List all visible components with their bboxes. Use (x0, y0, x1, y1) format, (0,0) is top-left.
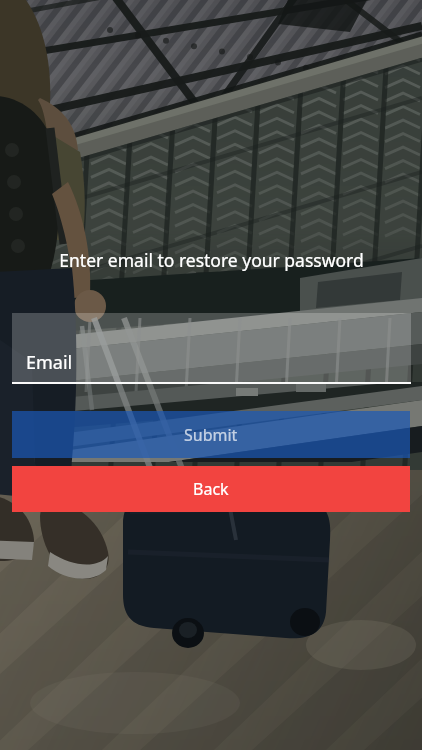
staticText: Enter email to restore your password (59, 248, 364, 272)
button[interactable]: Email (12, 313, 411, 384)
staticText: Back (193, 478, 229, 500)
button[interactable]: Back (12, 466, 410, 512)
button[interactable]: Submit (12, 411, 410, 458)
staticText: Submit (184, 424, 238, 446)
staticText: Email (26, 350, 73, 375)
